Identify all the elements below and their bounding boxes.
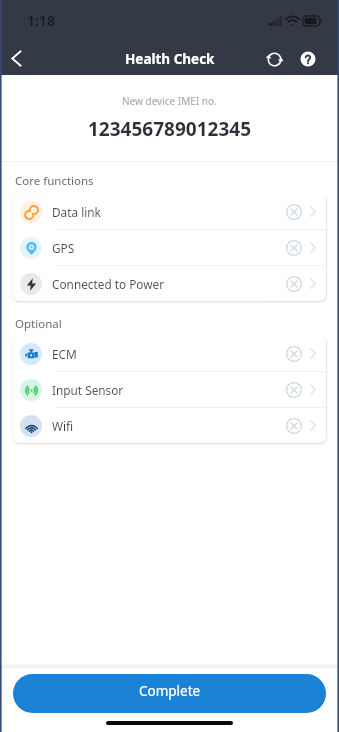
staticText: New device IMEI no. [122, 94, 217, 108]
staticText: GPS [52, 240, 75, 256]
button[interactable]: Connected to Power [13, 266, 326, 301]
staticText: Input Sensor [52, 382, 124, 398]
button[interactable]: Back [1, 43, 32, 74]
staticText: Optional [15, 316, 62, 332]
button[interactable]: Refresh [259, 44, 289, 74]
button[interactable]: Input Sensor [13, 372, 326, 407]
staticText: 123456789012345 [88, 116, 252, 142]
staticText: ECM [52, 346, 77, 362]
button[interactable]: Help [293, 44, 323, 74]
staticText: Wifi [52, 418, 74, 434]
button[interactable]: ECM [13, 336, 326, 371]
staticText: Connected to Power [52, 276, 165, 292]
button[interactable]: Complete [13, 674, 326, 713]
button[interactable]: GPS [13, 230, 326, 265]
staticText: 1:18 [27, 11, 55, 30]
button[interactable]: Data link [13, 194, 326, 229]
staticText: Core functions [15, 173, 94, 189]
staticText: Data link [52, 204, 101, 220]
button[interactable]: Wifi [13, 408, 326, 443]
staticText: Complete [139, 682, 201, 700]
staticText: Health Check [125, 50, 215, 68]
